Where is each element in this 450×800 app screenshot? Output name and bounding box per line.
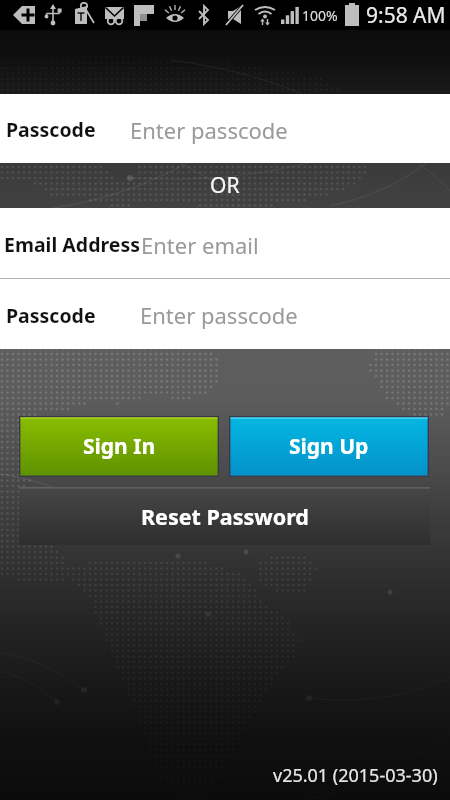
staticText: Enter email <box>141 230 259 260</box>
staticText: Enter passcode <box>130 115 288 145</box>
button[interactable]: Sign In <box>19 416 219 477</box>
staticText: Enter passcode <box>140 300 298 330</box>
staticText: Reset Password <box>141 502 309 531</box>
button[interactable]: Passcode <box>0 279 450 349</box>
staticText: Sign In <box>83 432 156 461</box>
staticText: 9:58 AM <box>366 1 446 30</box>
staticText: 100% <box>302 6 338 25</box>
staticText: Passcode <box>6 116 96 143</box>
button[interactable]: Reset Password <box>19 487 430 545</box>
staticText: OR <box>210 171 240 200</box>
staticText: v25.01 (2015-03-30) <box>273 763 438 788</box>
staticText: Passcode <box>6 302 96 329</box>
button[interactable]: Passcode <box>0 94 450 163</box>
staticText: Sign Up <box>289 432 369 461</box>
button[interactable]: Email Address <box>0 208 450 279</box>
button[interactable]: Sign Up <box>229 416 429 477</box>
staticText: Email Address <box>4 231 141 258</box>
